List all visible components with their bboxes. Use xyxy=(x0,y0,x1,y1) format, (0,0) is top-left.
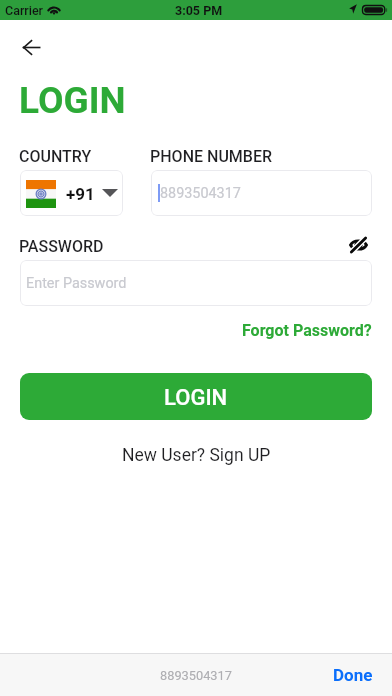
staticText: LOGIN xyxy=(164,385,228,411)
staticText: Done xyxy=(333,665,373,685)
button[interactable]: Show password xyxy=(345,232,371,258)
staticText: +91 xyxy=(66,184,95,204)
button[interactable]: New User? Sign UP xyxy=(122,445,271,466)
button[interactable]: Forgot Password? xyxy=(242,321,372,340)
button[interactable]: Enter Password xyxy=(20,260,372,306)
staticText: LOGIN xyxy=(19,79,126,122)
staticText: PASSWORD xyxy=(19,237,104,256)
staticText: 8893504317 xyxy=(160,185,241,202)
button[interactable]: Back xyxy=(17,33,46,62)
staticText: Carrier xyxy=(5,3,44,18)
button[interactable]: +91 xyxy=(20,170,123,216)
staticText: Forgot Password? xyxy=(242,321,372,340)
staticText: 3:05 PM xyxy=(175,3,223,18)
staticText: New User? Sign UP xyxy=(122,445,271,466)
staticText: COUNTRY xyxy=(19,147,92,166)
staticText: PHONE NUMBER xyxy=(150,147,273,166)
staticText: 8893504317 xyxy=(160,668,232,683)
staticText: Enter Password xyxy=(26,275,127,292)
button[interactable]: 8893504317 xyxy=(151,170,372,216)
button[interactable]: Done xyxy=(333,665,373,685)
button[interactable]: LOGIN xyxy=(20,373,372,420)
